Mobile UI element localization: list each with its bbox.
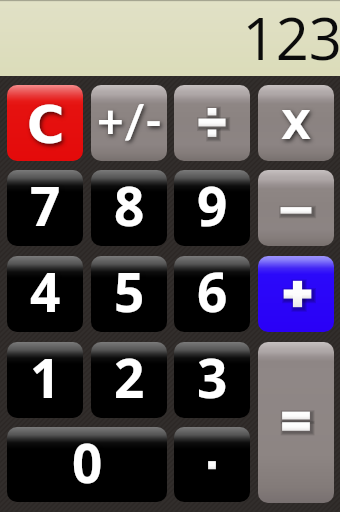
button[interactable]: 9 [174,170,250,246]
staticText: 5 [114,256,145,327]
button[interactable]: Decimal point [174,427,250,502]
button[interactable]: Multiply [258,85,334,161]
button[interactable]: 4 [7,256,83,332]
staticText: 4 [30,256,61,327]
button[interactable]: 6 [174,256,250,332]
button[interactable]: Equals [258,342,334,503]
staticText: C [27,96,65,155]
button[interactable]: 1 [7,342,83,418]
button[interactable]: 0 [7,427,167,502]
staticText: 3 [197,342,228,413]
button[interactable]: Divide [174,85,250,161]
button[interactable]: Plus [258,256,334,332]
button[interactable]: 7 [7,170,83,246]
staticText: X [281,103,312,148]
button[interactable]: Minus [258,170,334,246]
staticText: 0 [72,427,103,498]
staticText: 123 [242,0,340,74]
button[interactable]: 8 [91,170,167,246]
staticText: 6 [197,256,228,327]
staticText: 2 [114,342,145,413]
staticText: 7 [30,170,61,241]
button[interactable]: 3 [174,342,250,418]
staticText: 1 [30,342,61,413]
staticText: 9 [197,170,228,241]
staticText: 8 [114,170,145,241]
button[interactable]: C [7,85,83,161]
button[interactable]: Plus minus [91,85,167,161]
button[interactable]: 2 [91,342,167,418]
staticText: +/- [97,93,163,148]
button[interactable]: 5 [91,256,167,332]
